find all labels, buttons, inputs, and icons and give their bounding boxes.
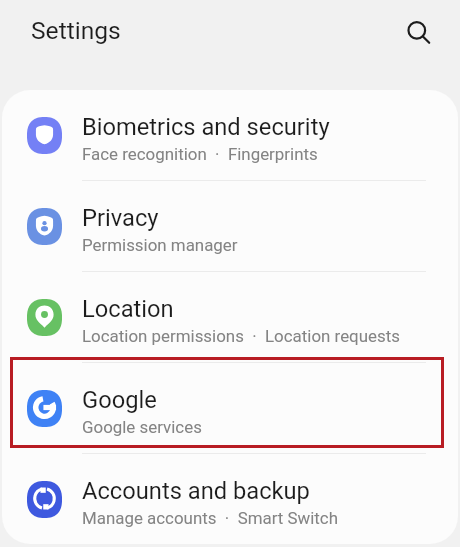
staticText: Location permissions · Location requests <box>82 326 400 346</box>
staticText: Manage accounts · Smart Switch <box>82 508 339 528</box>
staticText: Privacy <box>82 204 159 232</box>
staticText: Google <box>82 386 157 414</box>
button[interactable]: Location <box>2 272 458 363</box>
staticText: Accounts and backup <box>82 477 310 505</box>
staticText: Settings <box>31 16 121 45</box>
button[interactable]: Google <box>2 363 458 454</box>
button[interactable]: Search <box>401 5 443 65</box>
staticText: Location <box>82 295 174 323</box>
staticText: Permission manager <box>82 235 238 255</box>
button[interactable]: Biometrics and security <box>2 90 458 181</box>
button[interactable]: Privacy <box>2 181 458 272</box>
staticText: Face recognition · Fingerprints <box>82 144 318 164</box>
staticText: Google services <box>82 417 202 437</box>
button[interactable]: Accounts and backup <box>2 454 458 544</box>
staticText: Biometrics and security <box>82 113 330 141</box>
